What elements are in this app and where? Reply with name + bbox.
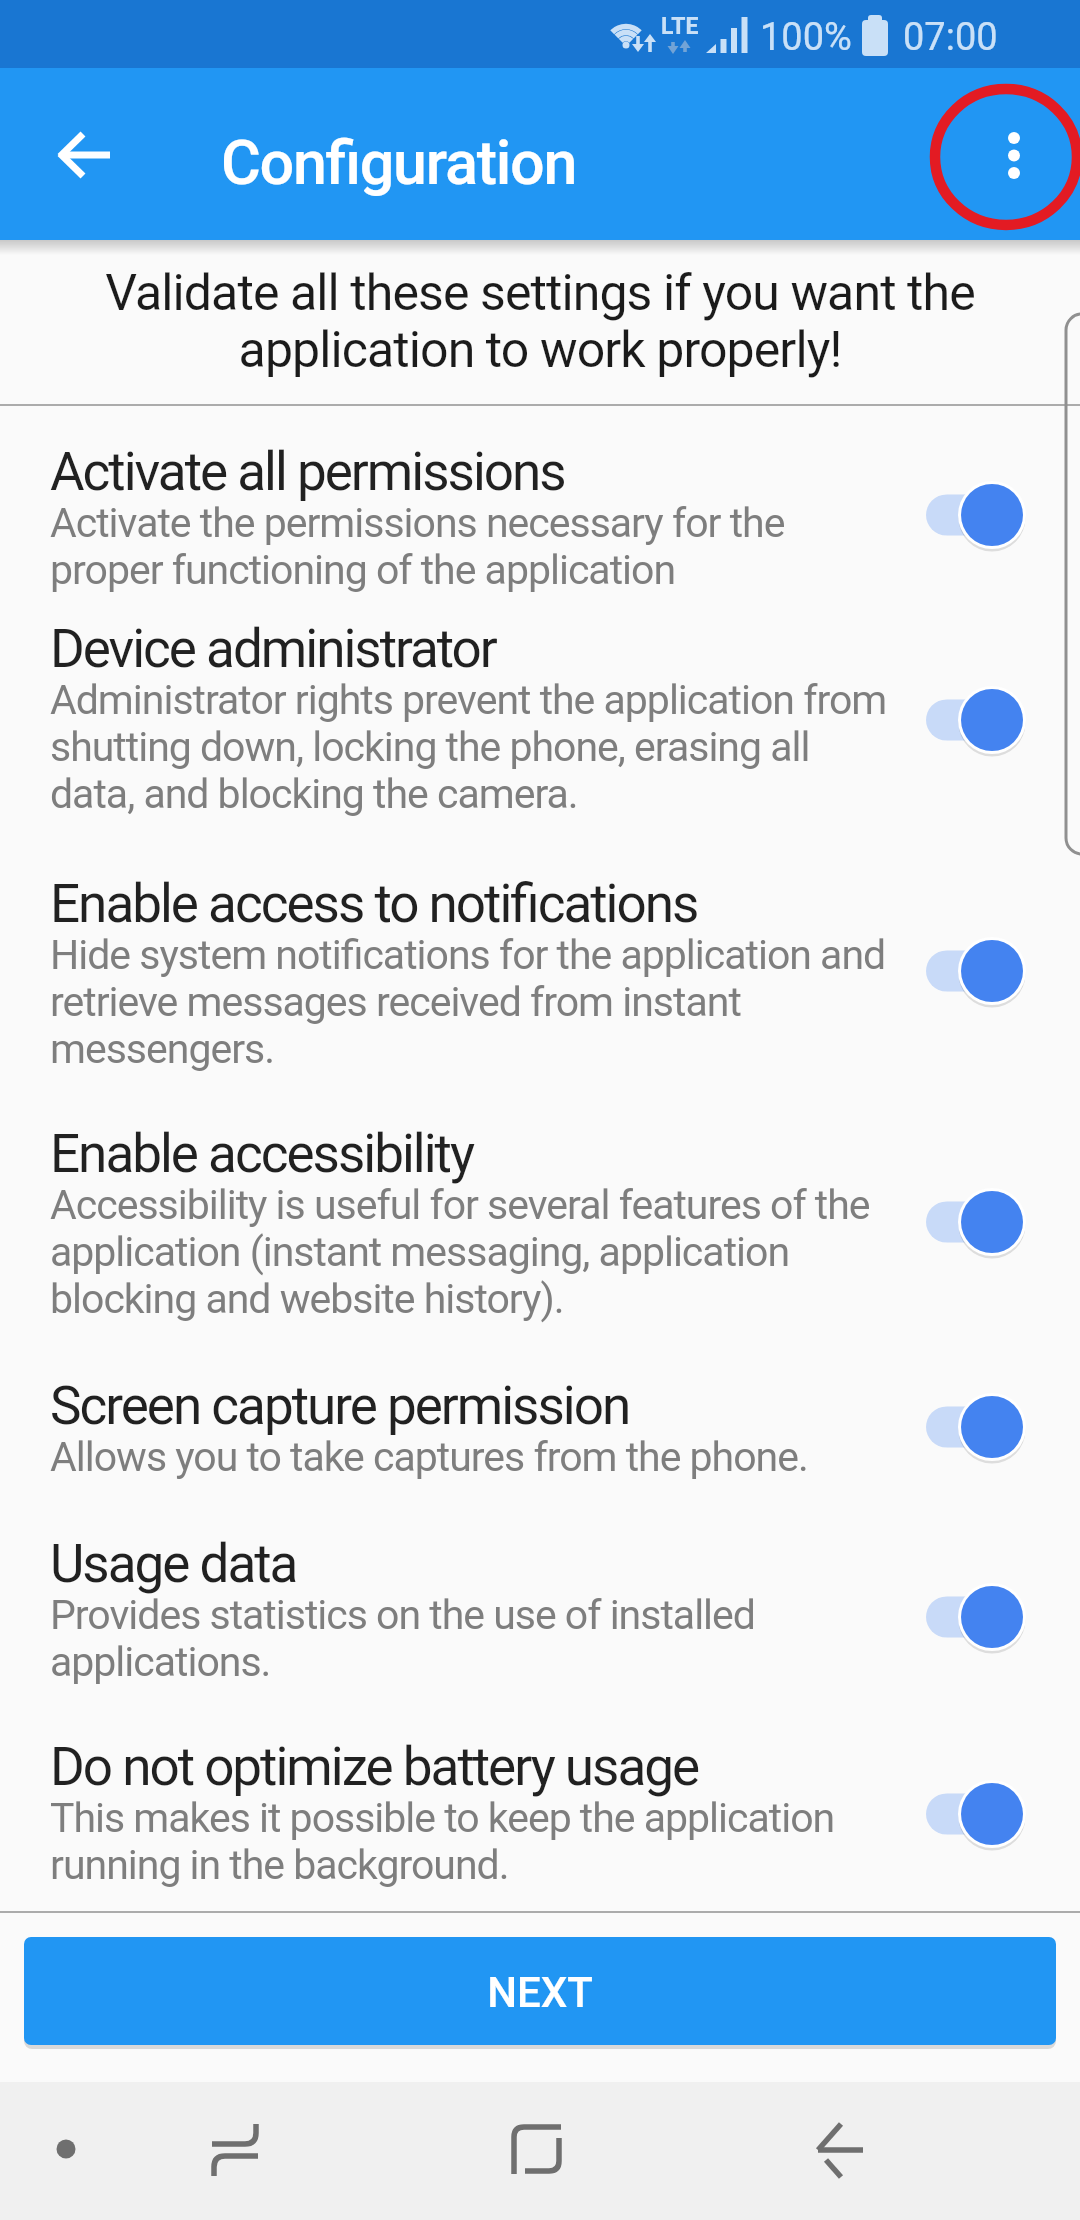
button[interactable]: Activate all permissions	[0, 420, 1080, 627]
staticText: Provides statistics on the use of instal…	[50, 1591, 755, 1686]
staticText: Accessibility is useful for several feat…	[50, 1181, 870, 1323]
button[interactable]: Usage data	[0, 1542, 1080, 1745]
staticText: Validate all these settings if you want …	[0, 264, 1080, 379]
staticText: Device administrator	[50, 618, 496, 680]
staticText: NEXT	[24, 1968, 1056, 2017]
staticText: Administrator rights prevent the applica…	[50, 676, 887, 818]
staticText: Activate the permissions necessary for t…	[50, 499, 785, 594]
button[interactable]	[30, 122, 140, 188]
staticText: Activate all permissions	[50, 441, 565, 503]
button[interactable]	[958, 100, 1070, 212]
staticText: Do not optimize battery usage	[50, 1736, 699, 1798]
button[interactable]: Do not optimize battery usage	[0, 1745, 1080, 1910]
staticText: LTE	[661, 13, 699, 40]
staticText: 100%	[760, 15, 852, 60]
staticText: Screen capture permission	[50, 1375, 630, 1437]
staticText: 07:00	[903, 15, 998, 60]
button[interactable]	[195, 2110, 275, 2190]
button[interactable]: Enable accessibility	[0, 1132, 1080, 1384]
button[interactable]: Screen capture permission	[0, 1384, 1080, 1542]
button[interactable]	[798, 2110, 878, 2190]
button[interactable]: Device administrator	[0, 627, 1080, 882]
button[interactable]: Enable access to notifications	[0, 882, 1080, 1132]
staticText: Enable access to notifications	[50, 873, 698, 935]
staticText: Enable accessibility	[50, 1123, 473, 1185]
staticText: Configuration	[221, 127, 577, 198]
button[interactable]	[36, 2119, 96, 2179]
staticText: Hide system notifications for the applic…	[50, 931, 886, 1073]
button[interactable]: NEXT	[24, 1937, 1056, 2045]
button[interactable]	[498, 2110, 578, 2190]
staticText: Usage data	[50, 1533, 297, 1595]
staticText: Allows you to take captures from the pho…	[50, 1433, 808, 1481]
staticText: This makes it possible to keep the appli…	[50, 1794, 835, 1889]
